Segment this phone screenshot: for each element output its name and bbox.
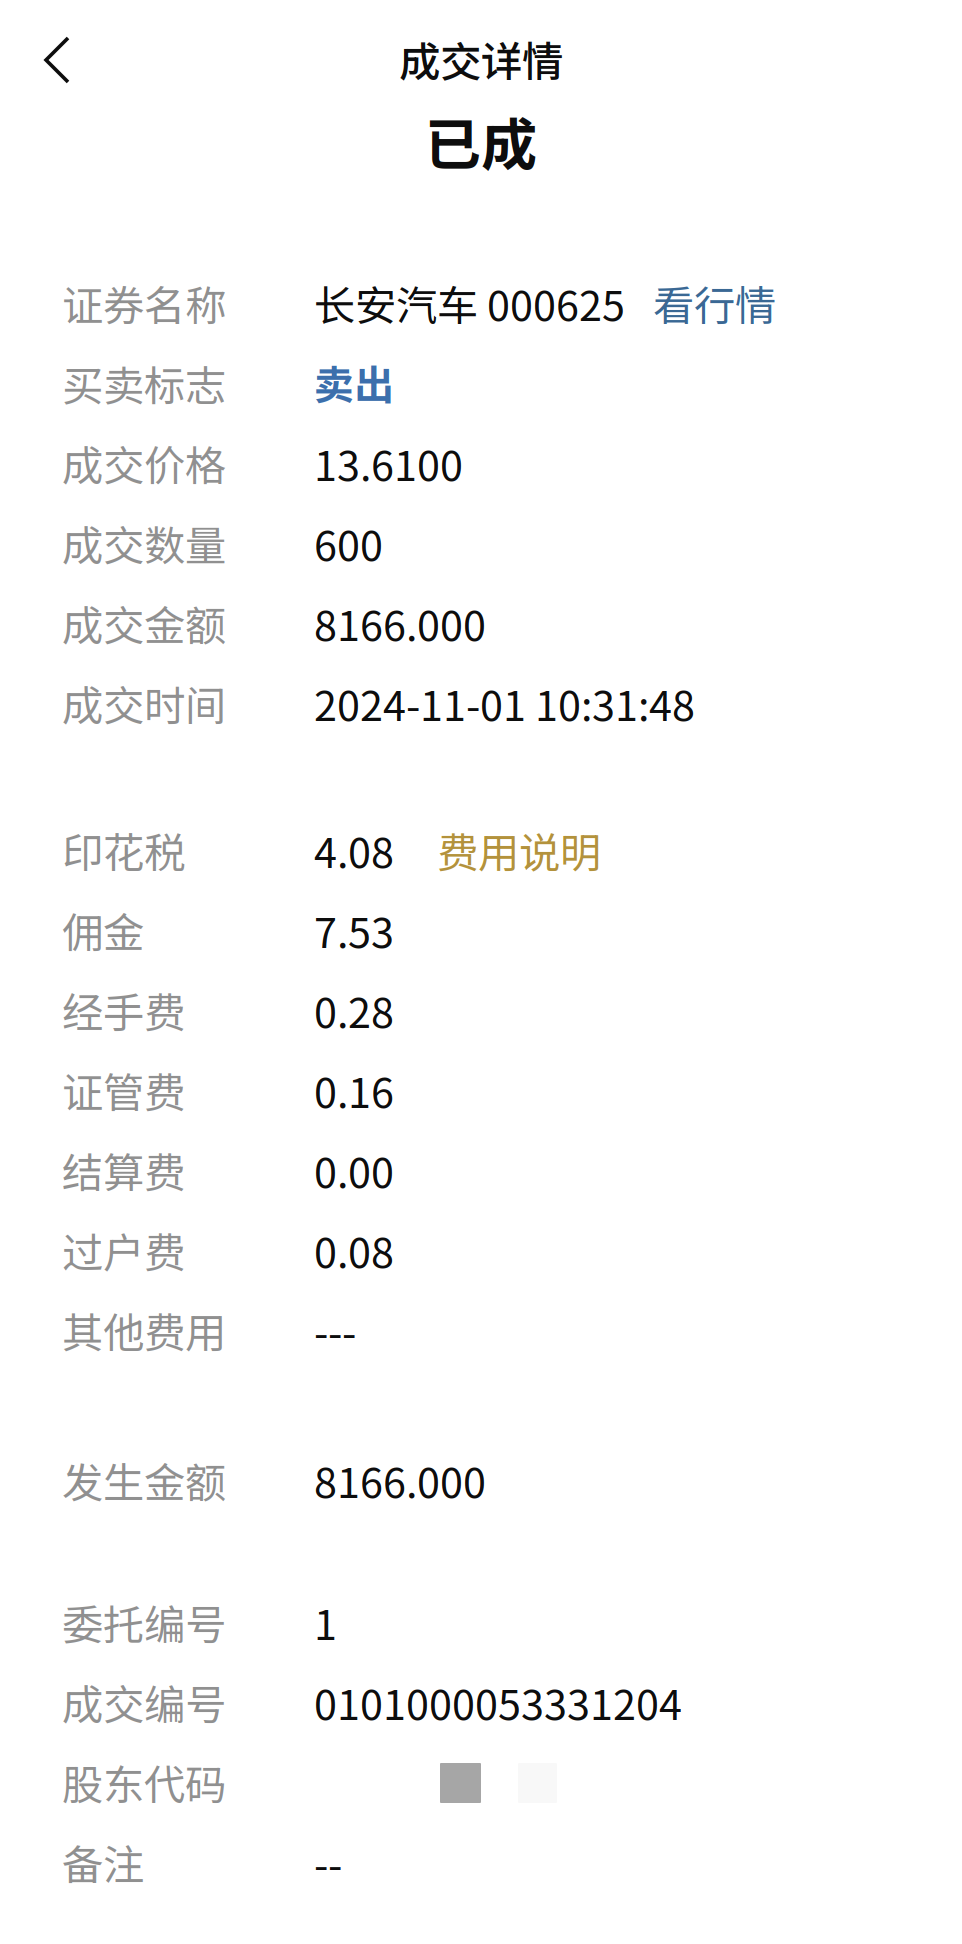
staticText: 1 (314, 1592, 337, 1652)
staticText: 过户费 (62, 1220, 185, 1280)
staticText: 0.16 (314, 1060, 394, 1120)
staticText: 4.08 (314, 820, 394, 880)
staticText: 委托编号 (62, 1592, 226, 1652)
staticText: 成交价格 (62, 433, 226, 493)
button[interactable]: Back (1, 0, 91, 90)
staticText: 成交编号 (62, 1672, 226, 1732)
staticText: 费用说明 (437, 820, 601, 880)
staticText: 0101000053331204 (314, 1672, 682, 1732)
staticText: 佣金 (62, 900, 144, 960)
staticText: 股东代码 (62, 1752, 226, 1812)
staticText: 经手费 (62, 980, 185, 1040)
staticText: 看行情 (653, 273, 776, 333)
staticText: 8166.000 (314, 593, 486, 653)
staticText: 卖出 (314, 353, 394, 411)
staticText: 印花税 (62, 820, 185, 880)
staticText: 已成 (425, 100, 537, 181)
staticText: 其他费用 (62, 1300, 226, 1360)
staticText: 0.00 (314, 1140, 394, 1200)
staticText: 13.6100 (314, 433, 463, 493)
staticText: 600 (314, 513, 383, 573)
staticText: 0.08 (314, 1220, 394, 1280)
staticText: 8166.000 (314, 1450, 486, 1510)
staticText: 成交详情 (399, 29, 563, 89)
staticText: 成交数量 (62, 513, 226, 573)
staticText: 结算费 (62, 1140, 185, 1200)
staticText: 证券名称 (62, 273, 226, 333)
staticText: 证管费 (62, 1060, 185, 1120)
staticText: 备注 (62, 1832, 144, 1892)
button[interactable]: 费用说明 (394, 820, 601, 880)
staticText: 0.28 (314, 980, 394, 1040)
staticText: 长安汽车 000625 (314, 273, 625, 333)
button[interactable]: 看行情 (625, 273, 776, 333)
staticText: -- (314, 1832, 342, 1892)
staticText: 发生金额 (62, 1450, 226, 1510)
staticText: 买卖标志 (62, 353, 226, 413)
staticText: 成交时间 (62, 673, 226, 733)
staticText: 成交金额 (62, 593, 226, 653)
staticText: 7.53 (314, 900, 394, 960)
staticText: 2024-11-01 10:31:48 (314, 673, 695, 733)
staticText: --- (314, 1300, 356, 1360)
